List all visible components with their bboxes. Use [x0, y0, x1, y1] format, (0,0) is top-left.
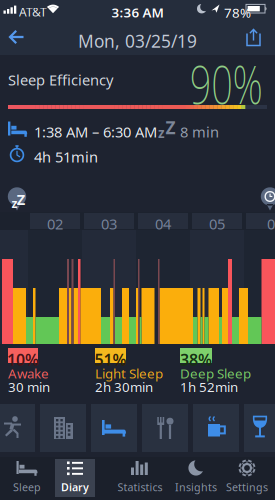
staticText: z — [11, 195, 17, 211]
staticText: Mon, 03/25/19 — [78, 29, 197, 52]
staticText: 10% — [7, 349, 39, 370]
staticText: AT&T — [19, 4, 47, 20]
staticText: 78% — [224, 4, 251, 21]
staticText: 02 — [47, 214, 63, 233]
staticText: 90% — [160, 48, 263, 119]
button[interactable]: Statistics — [115, 457, 165, 500]
staticText: Light Sleep — [95, 364, 163, 382]
staticText: Deep Sleep — [180, 364, 251, 382]
staticText: 0 — [267, 214, 275, 233]
staticText: Z — [17, 189, 25, 209]
button[interactable] — [142, 404, 188, 452]
button[interactable]: Sleep — [2, 457, 52, 500]
button[interactable] — [91, 404, 137, 452]
staticText: Z — [165, 116, 175, 139]
staticText: 4h 51min — [34, 147, 98, 166]
button[interactable] — [244, 404, 275, 452]
staticText: 1:38 AM – 6:30 AM — [34, 122, 157, 141]
button[interactable] — [40, 404, 86, 452]
staticText: Diary — [61, 480, 89, 494]
button[interactable] — [0, 404, 35, 452]
staticText: Statistics — [117, 480, 162, 494]
staticText: 03 — [101, 214, 117, 233]
staticText: 38% — [180, 349, 212, 370]
staticText: Settings — [226, 480, 268, 494]
button[interactable] — [193, 404, 239, 452]
staticText: Sleep Efficiency — [8, 70, 113, 89]
staticText: 30 min — [8, 378, 50, 396]
staticText: Insights — [175, 480, 217, 494]
staticText: 8 min — [180, 122, 219, 141]
staticText: 05 — [209, 214, 225, 233]
button[interactable] — [8, 28, 26, 46]
staticText: 3:36 AM — [111, 3, 163, 21]
staticText: 2h 30min — [95, 378, 153, 396]
button[interactable]: Insights — [171, 457, 221, 500]
staticText: Awake — [8, 364, 49, 382]
staticText: 04 — [155, 214, 171, 233]
staticText: 1h 52min — [180, 378, 238, 396]
button[interactable] — [245, 26, 263, 48]
staticText: z — [158, 124, 165, 142]
staticText: Sleep — [13, 480, 41, 494]
button[interactable]: Settings — [222, 457, 272, 500]
button[interactable]: Diary — [50, 457, 100, 500]
staticText: 51% — [94, 349, 126, 370]
